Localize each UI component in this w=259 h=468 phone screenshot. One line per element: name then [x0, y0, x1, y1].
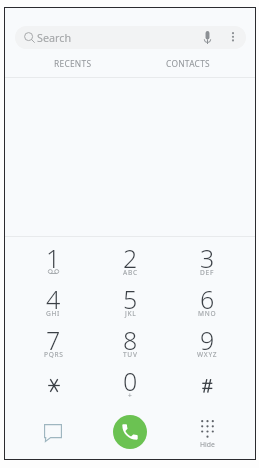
button[interactable]: 5	[92, 286, 169, 327]
staticText: 0	[123, 364, 138, 398]
staticText: 5	[123, 282, 138, 316]
button[interactable]	[169, 368, 246, 409]
button[interactable]: Search	[15, 26, 246, 49]
staticText: +	[128, 391, 133, 400]
staticText: WXYZ	[197, 350, 218, 359]
staticText: CONTACTS	[166, 58, 210, 69]
staticText: Hide	[200, 440, 215, 449]
button[interactable]: 9	[169, 327, 246, 368]
staticText: MNO	[198, 309, 217, 318]
staticText: GHI	[46, 309, 61, 318]
staticText: 6	[200, 282, 215, 316]
button[interactable]: 3	[169, 245, 246, 286]
button[interactable]: 2	[92, 245, 169, 286]
staticText: PQRS	[44, 350, 64, 359]
staticText: 8	[123, 323, 138, 357]
button[interactable]: 7	[15, 327, 92, 368]
button[interactable]	[15, 368, 92, 409]
button[interactable]: More options	[224, 26, 242, 49]
button[interactable]: 0	[92, 368, 169, 409]
staticText: 1	[46, 241, 61, 275]
button[interactable]: 1	[15, 245, 92, 286]
staticText: 9	[200, 323, 215, 357]
button[interactable]: Hide keypad	[184, 408, 230, 454]
button[interactable]: 6	[169, 286, 246, 327]
staticText: 4	[46, 282, 61, 316]
staticText: JKL	[125, 309, 137, 318]
staticText: RECENTS	[54, 58, 92, 69]
button[interactable]: RECENTS	[15, 51, 130, 75]
button[interactable]: Call	[113, 415, 147, 449]
staticText: Search	[37, 30, 72, 45]
button[interactable]: Message	[32, 409, 72, 449]
staticText: ABC	[123, 268, 138, 277]
staticText: 7	[46, 323, 61, 357]
button[interactable]: Voice search	[196, 26, 218, 49]
staticText: 2	[123, 241, 138, 275]
staticText: DEF	[200, 268, 215, 277]
button[interactable]: 4	[15, 286, 92, 327]
button[interactable]: 8	[92, 327, 169, 368]
staticText: TUV	[123, 350, 138, 359]
button[interactable]: CONTACTS	[130, 51, 246, 75]
staticText: 3	[200, 241, 215, 275]
